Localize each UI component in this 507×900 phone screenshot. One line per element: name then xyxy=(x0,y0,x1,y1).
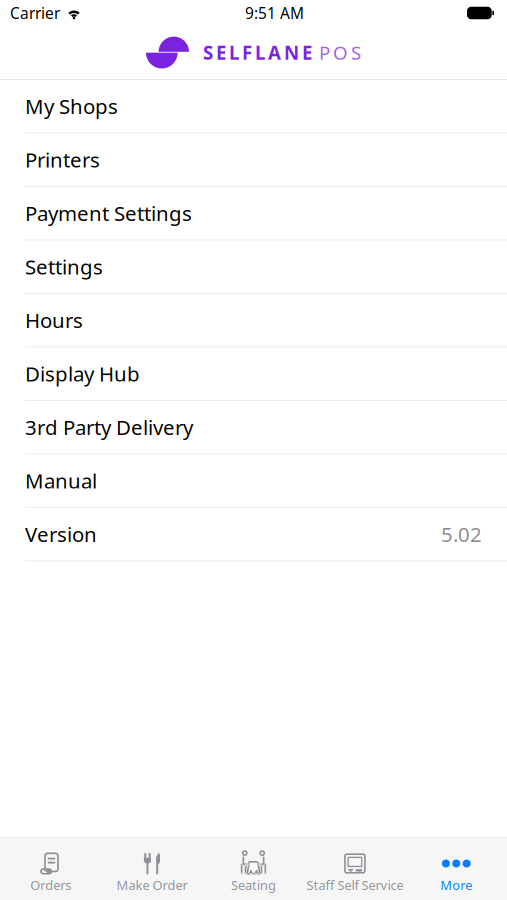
staticText: P O S xyxy=(316,40,361,65)
staticText: Staff Self Service xyxy=(306,876,403,893)
staticText: Version xyxy=(25,521,97,548)
staticText: Seating xyxy=(231,876,276,893)
button[interactable]: Payment Settings xyxy=(0,187,507,240)
button[interactable]: Orders xyxy=(0,840,101,898)
button[interactable]: More xyxy=(406,840,507,898)
staticText: Orders xyxy=(30,876,71,893)
button[interactable]: Staff Self Service xyxy=(304,840,406,898)
staticText: 5.02 xyxy=(441,521,482,548)
button[interactable]: Version xyxy=(0,508,507,561)
staticText: Settings xyxy=(25,253,103,280)
button[interactable]: My Shops xyxy=(0,80,507,133)
staticText: Hours xyxy=(25,307,83,334)
staticText: More xyxy=(440,876,472,893)
staticText: My Shops xyxy=(25,93,118,120)
button[interactable]: Make Order xyxy=(101,840,203,898)
staticText: Payment Settings xyxy=(25,200,192,227)
button[interactable]: Printers xyxy=(0,133,507,187)
staticText: Display Hub xyxy=(25,360,140,387)
staticText: 9:51 AM xyxy=(245,3,304,23)
button[interactable]: Hours xyxy=(0,294,507,347)
button[interactable]: 3rd Party Delivery xyxy=(0,401,507,454)
staticText: 3rd Party Delivery xyxy=(25,414,193,441)
button[interactable]: Manual xyxy=(0,454,507,508)
button[interactable]: Seating xyxy=(203,840,304,898)
button[interactable]: Settings xyxy=(0,240,507,294)
staticText: S E L F L A N E xyxy=(203,40,312,65)
button[interactable]: Display Hub xyxy=(0,347,507,401)
staticText: Carrier xyxy=(10,3,60,23)
staticText: Printers xyxy=(25,146,100,173)
staticText: Make Order xyxy=(117,876,188,893)
staticText: Manual xyxy=(25,467,97,494)
